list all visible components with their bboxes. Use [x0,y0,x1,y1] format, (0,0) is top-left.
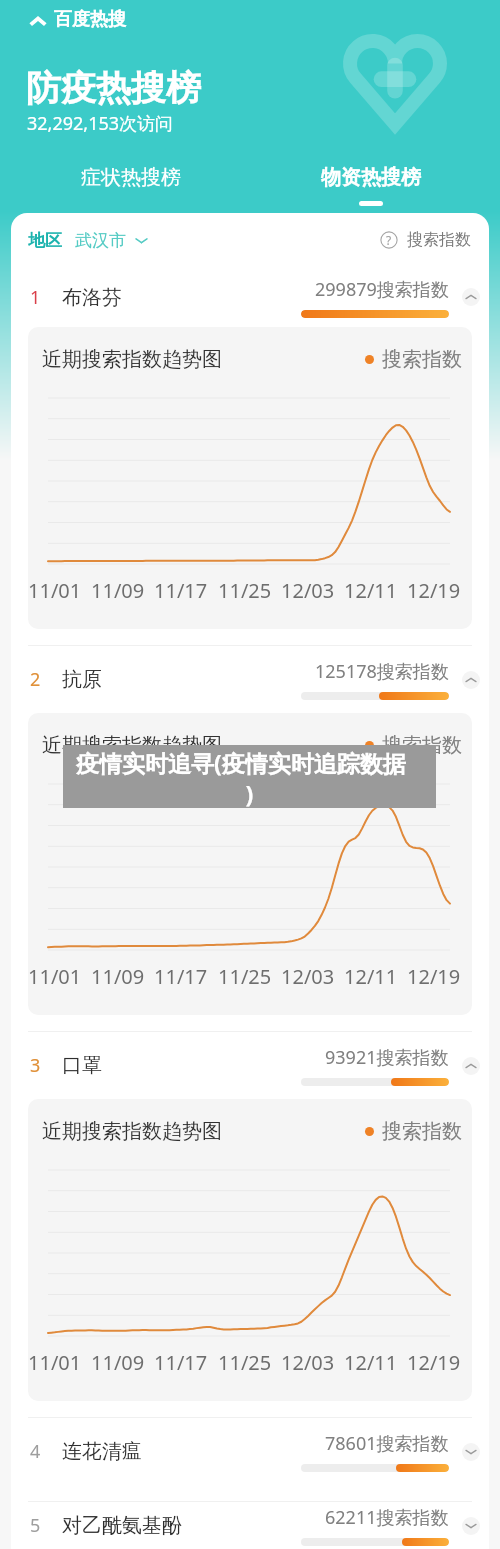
staticText: 抗原 [62,667,102,692]
button[interactable]: 1 [11,267,489,327]
staticText: 12/19 [407,577,461,601]
staticText: 搜索指数 [382,1119,462,1144]
staticText: 32,292,153次访问 [27,111,174,136]
staticText: 搜索指数 [407,230,471,250]
button[interactable]: 3 [11,1032,489,1099]
button[interactable]: Collapse [462,288,480,306]
button[interactable]: Collapse [462,1057,480,1075]
button[interactable]: 5 [11,1502,489,1549]
staticText: 93921搜索指数 [325,1045,449,1070]
staticText: 近期搜索指数趋势图 [42,1119,222,1144]
staticText: 12/03 [281,577,335,601]
staticText: 口罩 [62,1053,102,1078]
staticText: ? [386,232,392,248]
staticText: 症状热搜榜 [81,165,181,190]
staticText: 搜索指数 [382,733,462,758]
staticText: 武汉市 [75,230,126,251]
staticText: 11/01 [28,577,82,601]
staticText: 299879搜索指数 [315,277,449,302]
staticText: 12/19 [407,1349,461,1373]
staticText: 11/09 [91,963,145,987]
staticText: 近期搜索指数趋势图 [42,733,222,758]
button[interactable]: ? [380,230,471,250]
staticText: 搜索指数 [382,347,462,372]
button[interactable]: 4 [11,1418,489,1485]
button[interactable]: Expand [462,1443,480,1461]
button[interactable]: 地区 [28,230,148,251]
staticText: 12/11 [344,577,398,601]
button[interactable]: 症状热搜榜 [0,165,262,206]
staticText: 62211搜索指数 [325,1505,449,1530]
staticText: 11/17 [154,1349,208,1373]
staticText: 11/17 [154,963,208,987]
staticText: 11/25 [218,963,272,987]
staticText: 地区 [28,230,62,251]
staticText: 对乙酰氨基酚 [62,1513,182,1538]
staticText: 物资热搜榜 [321,165,421,190]
staticText: 12/03 [281,1349,335,1373]
staticText: ) [63,778,436,809]
staticText: 布洛芬 [62,285,122,310]
button[interactable]: 百度热搜 [28,8,126,31]
staticText: 1 [30,285,41,310]
staticText: 2 [30,667,41,692]
staticText: 11/25 [218,577,272,601]
staticText: 11/01 [28,963,82,987]
button[interactable]: Expand [462,1517,480,1535]
staticText: 11/09 [91,1349,145,1373]
staticText: 12/03 [281,963,335,987]
staticText: 11/01 [28,1349,82,1373]
staticText: 4 [30,1439,41,1464]
button[interactable]: Collapse [462,671,480,689]
staticText: 125178搜索指数 [315,659,449,684]
staticText: 12/19 [407,963,461,987]
staticText: 78601搜索指数 [325,1431,449,1456]
staticText: 11/09 [91,577,145,601]
staticText: 疫情实时追寻(疫情实时追踪数据 [76,747,436,778]
staticText: 11/17 [154,577,208,601]
staticText: 3 [30,1053,41,1078]
staticText: 防疫热搜榜 [26,66,201,110]
staticText: 11/25 [218,1349,272,1373]
button[interactable]: 2 [11,646,489,713]
staticText: 连花清瘟 [62,1439,142,1464]
staticText: 百度热搜 [54,8,126,31]
staticText: 5 [30,1513,41,1538]
button[interactable]: 物资热搜榜 [262,165,480,206]
staticText: 12/11 [344,1349,398,1373]
staticText: 12/11 [344,963,398,987]
staticText: 近期搜索指数趋势图 [42,347,222,372]
